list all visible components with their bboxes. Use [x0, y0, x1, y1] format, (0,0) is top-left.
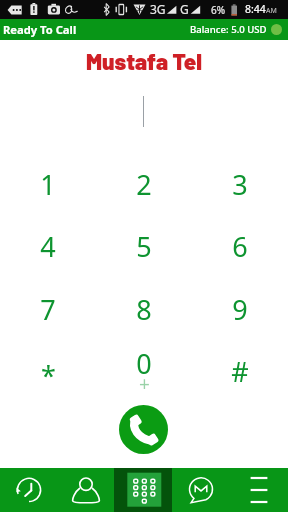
- button[interactable]: 0: [100, 347, 188, 405]
- staticText: 8:44: [245, 2, 266, 16]
- button[interactable]: Messages: [172, 468, 230, 512]
- button[interactable]: Recent calls: [0, 468, 57, 512]
- button[interactable]: 9: [196, 285, 284, 343]
- staticText: 0: [136, 345, 152, 382]
- staticText: 2: [136, 166, 152, 203]
- staticText: 3: [232, 166, 248, 203]
- staticText: 1: [40, 166, 56, 203]
- staticText: Balance: 5.0 USD: [190, 23, 267, 36]
- button[interactable]: 4: [4, 222, 92, 280]
- button[interactable]: 1: [4, 160, 92, 218]
- staticText: 8: [136, 291, 152, 328]
- button[interactable]: Menu: [230, 468, 288, 512]
- button[interactable]: 5: [100, 222, 188, 280]
- button[interactable]: 2: [100, 160, 188, 218]
- button[interactable]: 3: [196, 160, 284, 218]
- staticText: AM: [266, 6, 277, 16]
- staticText: 3G: [150, 1, 166, 17]
- staticText: 6: [232, 228, 248, 265]
- staticText: *: [41, 357, 56, 394]
- staticText: #: [231, 353, 249, 390]
- staticText: Mustafa Tel: [86, 47, 202, 74]
- button[interactable]: #: [196, 347, 284, 405]
- staticText: +: [139, 371, 150, 397]
- staticText: Ready To Call: [3, 22, 77, 37]
- staticText: G: [180, 1, 189, 17]
- staticText: 6%: [211, 3, 226, 17]
- button[interactable]: 7: [4, 285, 92, 343]
- staticText: 4: [40, 228, 56, 265]
- staticText: 5: [136, 228, 152, 265]
- button[interactable]: 8: [100, 285, 188, 343]
- button[interactable]: Contacts: [57, 468, 114, 512]
- button[interactable]: *: [4, 347, 92, 405]
- staticText: 7: [40, 291, 56, 328]
- button[interactable]: 6: [196, 222, 284, 280]
- button[interactable]: Dialpad: [114, 468, 172, 512]
- button[interactable]: Call: [119, 405, 168, 454]
- staticText: 9: [232, 291, 248, 328]
